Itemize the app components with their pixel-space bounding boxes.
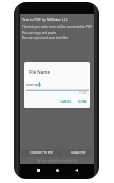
button[interactable]: SHARE PDF [64,149,93,157]
staticText: CONVERT TO PDF [30,151,54,155]
staticText: SHARE PDF [71,151,86,155]
button[interactable]: DONE [76,98,89,106]
staticText: Tap here to find the converted file [20,159,94,163]
button[interactable]: Back [72,166,81,175]
staticText: The text you enter here will be converte… [22,25,92,29]
button[interactable]: CANCEL [58,98,74,106]
button[interactable]: CONVERT TO PDF [21,149,63,157]
staticText: DONE [78,100,87,104]
staticText: example [26,82,42,87]
button[interactable]: Home [53,166,62,175]
button[interactable]: Recents [34,166,43,175]
staticText: 7 / 50 [79,91,87,95]
staticText: You can copy and paste [22,31,57,35]
staticText: Text to PDF by NiMaker LLC [22,17,69,22]
staticText: File Name [29,69,50,75]
staticText: You can open and save text files [22,36,69,40]
staticText: CANCEL [60,100,72,104]
